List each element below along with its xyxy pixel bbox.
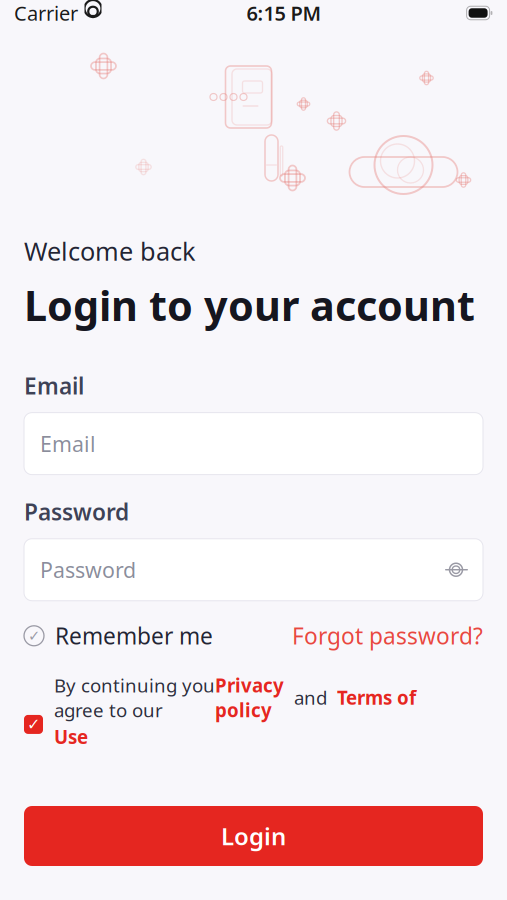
staticText: Email — [24, 370, 84, 401]
staticText: Remember me — [55, 621, 213, 651]
staticText: Carrier — [14, 0, 78, 26]
staticText: Use — [54, 724, 88, 749]
staticText: ✓ — [27, 715, 40, 733]
button[interactable]: Email — [24, 413, 483, 475]
button[interactable]: Terms of — [337, 685, 416, 710]
staticText: Email — [40, 429, 96, 458]
button[interactable]: Privacy policy — [215, 673, 284, 722]
button[interactable]: Login — [24, 806, 483, 866]
button[interactable]: Agree to terms — [24, 713, 43, 734]
staticText: Privacy policy — [215, 673, 284, 722]
staticText: and — [284, 685, 337, 710]
staticText: Password — [24, 497, 129, 527]
staticText: 6:15 PM — [246, 0, 321, 26]
button[interactable]: Password — [24, 539, 483, 601]
staticText: Forgot password? — [292, 621, 483, 651]
staticText: Terms of — [337, 685, 416, 710]
staticText: Login to your account — [24, 278, 475, 332]
staticText: Welcome back — [24, 234, 196, 268]
button[interactable]: ✓ — [24, 617, 213, 655]
staticText: By continuing you agree to our — [54, 673, 215, 722]
button[interactable]: Use — [54, 724, 88, 749]
staticText: Login — [221, 820, 286, 852]
staticText: ✓ — [28, 627, 40, 644]
staticText: Password — [40, 556, 136, 584]
button[interactable]: Forgot password? — [292, 617, 483, 655]
